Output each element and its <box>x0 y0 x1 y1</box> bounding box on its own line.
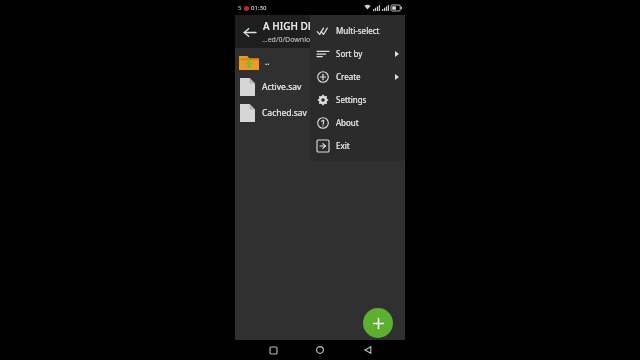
button[interactable]: Multi-select <box>310 19 405 42</box>
staticText: Sort by <box>336 48 363 59</box>
button[interactable]: About <box>310 111 405 134</box>
button[interactable]: Settings <box>310 88 405 111</box>
staticText: 01:30 <box>251 4 267 12</box>
button[interactable]: Cached.sav <box>235 100 405 126</box>
staticText: Exit <box>336 140 350 151</box>
staticText: Multi-select <box>336 25 380 36</box>
staticText: Active.sav <box>262 81 302 93</box>
staticText: Settings <box>336 94 367 105</box>
button[interactable]: Back <box>358 340 378 360</box>
staticText: Create <box>336 71 361 82</box>
button[interactable]: Back <box>237 20 261 44</box>
button[interactable]: Add <box>363 308 393 338</box>
button[interactable]: Active.sav <box>235 74 405 100</box>
button[interactable]: Exit <box>310 134 405 157</box>
button[interactable]: Sort by <box>310 42 405 65</box>
staticText: A HIGH DEF <box>263 19 319 33</box>
staticText: ...ed/0/Download <box>262 35 319 45</box>
staticText: Cached.sav <box>262 107 307 119</box>
button[interactable]: Recents <box>263 340 283 360</box>
staticText: 5 <box>238 4 242 12</box>
staticText: About <box>336 117 359 128</box>
button[interactable]: .. <box>235 48 405 74</box>
button[interactable]: Home <box>310 340 330 360</box>
button[interactable]: Create <box>310 65 405 88</box>
staticText: .. <box>265 56 270 67</box>
